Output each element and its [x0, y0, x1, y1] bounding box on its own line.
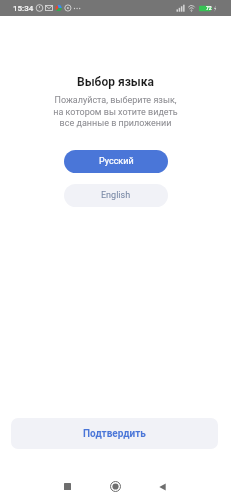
button[interactable]: Русский — [64, 150, 168, 173]
button[interactable]: English — [64, 184, 168, 207]
button[interactable]: Подтвердить — [11, 418, 218, 449]
button[interactable]: Back — [148, 472, 177, 500]
staticText: Выбор языка — [0, 75, 231, 89]
staticText: 15:34 — [13, 4, 34, 13]
staticText: English — [101, 190, 131, 201]
staticText: Русский — [99, 156, 134, 167]
staticText: Пожалуйста, выберите язык, на котором вы… — [0, 95, 231, 128]
staticText: Подтвердить — [83, 428, 146, 440]
staticText: 72 — [206, 5, 212, 11]
button[interactable]: Home — [101, 472, 130, 500]
button[interactable]: Recent apps — [53, 472, 82, 500]
